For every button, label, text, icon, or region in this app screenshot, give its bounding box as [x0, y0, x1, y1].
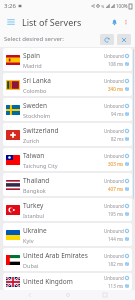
staticText: List of Servers	[22, 16, 82, 28]
button[interactable]: More options	[121, 17, 131, 27]
button[interactable]: Notifications	[107, 15, 121, 29]
staticText: Unbound	[104, 78, 124, 84]
staticText: Taiwan	[23, 151, 45, 160]
button[interactable]: Sri Lanka	[3, 73, 132, 96]
staticText: 82 ms	[111, 136, 124, 142]
staticText: Unbound	[104, 228, 124, 234]
button[interactable]: United Kingdom	[3, 273, 132, 290]
staticText: Unbound	[104, 53, 124, 59]
staticText: 3:26	[4, 2, 16, 10]
staticText: 195 ms	[108, 211, 124, 217]
staticText: Unbound	[104, 153, 124, 159]
staticText: 108 ms	[108, 61, 124, 67]
staticText: Select desired server:	[4, 35, 64, 43]
staticText: Unbound	[104, 275, 124, 281]
staticText: %	[101, 4, 105, 9]
staticText: 113 ms	[108, 283, 124, 289]
staticText: Thailand	[23, 176, 50, 185]
staticText: Unbound	[104, 128, 124, 134]
button[interactable]: Thailand	[3, 173, 132, 196]
button[interactable]: Ukraine	[3, 223, 132, 246]
staticText: 303 ms	[108, 161, 124, 167]
staticText: 182 ms	[108, 261, 124, 267]
staticText: United Kingdom	[23, 277, 73, 286]
button[interactable]: Spain	[3, 48, 132, 71]
staticText: 100%	[116, 3, 128, 9]
staticText: Unbound	[104, 253, 124, 259]
staticText: Istanbul	[23, 212, 45, 219]
staticText: Sri Lanka	[23, 76, 51, 85]
staticText: Madrid	[23, 62, 42, 69]
button[interactable]: Open navigation menu	[4, 15, 18, 29]
button[interactable]: Turkey	[3, 198, 132, 221]
staticText: 340 ms	[108, 86, 124, 92]
staticText: Colombo	[23, 87, 47, 94]
button[interactable]: Refresh server list	[100, 34, 114, 45]
button[interactable]: United Arab Emirates	[3, 248, 132, 271]
staticText: Spain	[23, 51, 40, 60]
staticText: Zurich	[23, 137, 40, 144]
staticText: Ukraine	[23, 226, 47, 235]
staticText: Unbound	[104, 103, 124, 109]
staticText: Kyiv	[23, 237, 34, 244]
staticText: Bangkok	[23, 187, 46, 194]
staticText: Turkey	[23, 201, 44, 210]
staticText: Unbound	[104, 178, 124, 184]
staticText: Unbound	[104, 203, 124, 209]
button[interactable]: Home	[61, 290, 75, 300]
staticText: 94 ms	[111, 111, 124, 117]
button[interactable]: Clear selection	[117, 34, 131, 45]
staticText: Taichung City	[23, 162, 58, 169]
staticText: Dubai	[23, 262, 39, 269]
button[interactable]: Recent apps	[98, 290, 112, 300]
button[interactable]: Taiwan	[3, 148, 132, 171]
button[interactable]: Sweden	[3, 98, 132, 121]
staticText: 407 ms	[108, 186, 124, 192]
staticText: Sweden	[23, 101, 48, 110]
button[interactable]: Switzerland	[3, 123, 132, 146]
staticText: 144 ms	[108, 236, 124, 242]
staticText: Switzerland	[23, 126, 59, 135]
staticText: Stockholm	[23, 112, 51, 119]
staticText: United Arab Emirates	[23, 251, 88, 260]
